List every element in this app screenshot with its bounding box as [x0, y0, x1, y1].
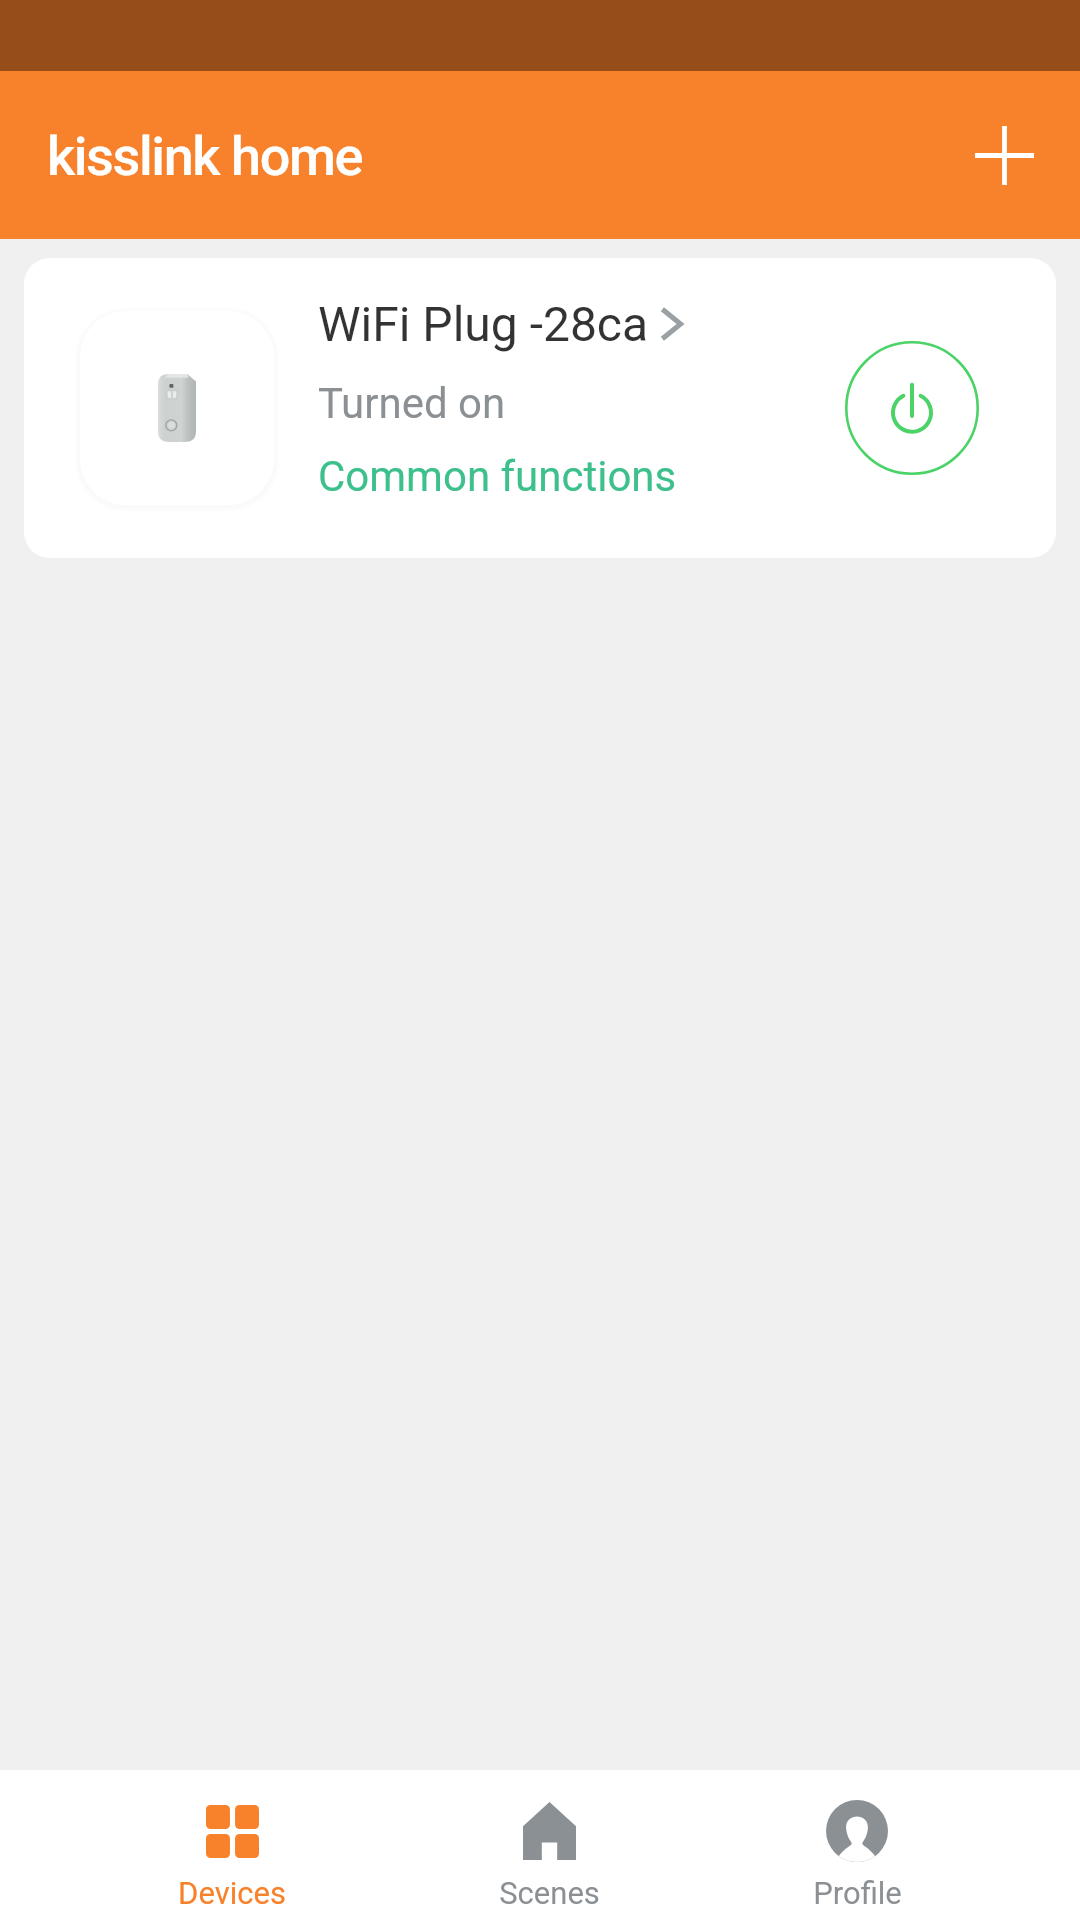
staticText: Turned on — [318, 379, 506, 428]
button[interactable]: WiFi Plug -28ca — [24, 258, 1056, 558]
button[interactable]: Devices — [102, 1770, 362, 1920]
button[interactable]: Power toggle — [842, 338, 982, 478]
staticText: Devices — [178, 1875, 286, 1911]
staticText: kisslink home — [47, 125, 363, 188]
button[interactable]: Profile — [727, 1770, 987, 1920]
button[interactable]: Scenes — [419, 1770, 679, 1920]
staticText: Profile — [813, 1875, 902, 1911]
button[interactable]: Common functions — [318, 452, 677, 501]
staticText: Scenes — [499, 1875, 600, 1911]
button[interactable]: Add device — [952, 103, 1057, 208]
staticText: WiFi Plug -28ca — [318, 296, 649, 352]
